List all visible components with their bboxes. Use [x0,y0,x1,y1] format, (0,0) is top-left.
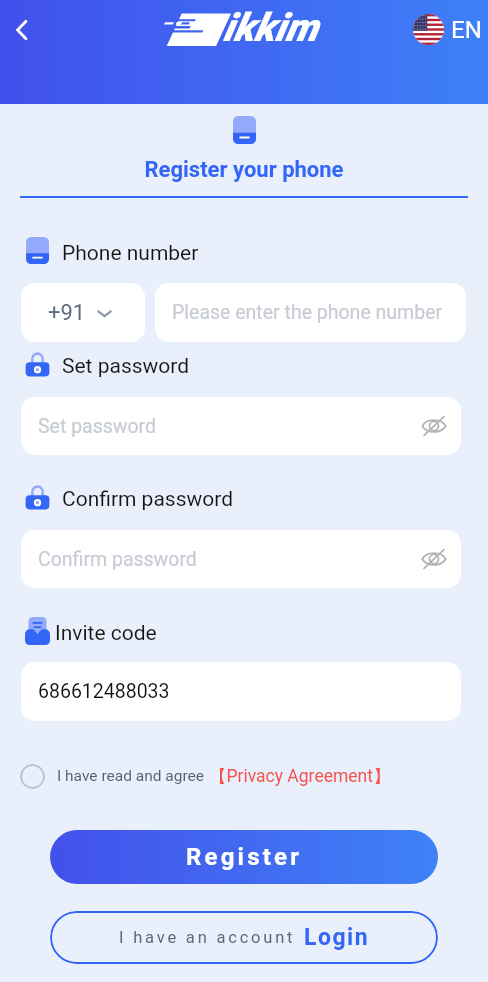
staticText: Login [304,924,370,951]
button[interactable]: +91 [21,283,145,342]
staticText: Register [186,843,303,871]
staticText: Please enter the phone number [172,301,443,324]
button[interactable]: 686612488033 [21,662,461,721]
staticText: Invite code [55,621,157,646]
button[interactable]: Back [4,12,40,48]
button[interactable]: Toggle password visibility [418,410,450,442]
button[interactable]: Confirm password [21,530,461,588]
button[interactable]: I have an account [50,911,438,964]
staticText: 【Privacy Agreement】 [209,765,391,787]
button[interactable]: Please enter the phone number [155,283,466,342]
staticText: Confirm password [38,548,197,571]
staticText: Confirm password [62,487,234,512]
button[interactable]: Set password [21,397,461,455]
staticText: Register your phone [0,157,488,183]
staticText: Set password [38,415,157,438]
staticText: +91 [48,300,86,326]
staticText: 686612488033 [38,680,170,703]
staticText: I have read and agree [57,767,204,785]
staticText: Set password [62,354,190,379]
staticText: Phone number [62,241,199,266]
button[interactable]: I have read and agree [20,760,391,792]
button[interactable]: Register [50,830,438,884]
staticText: EN [451,16,482,44]
staticText: ikkim [223,5,318,51]
staticText: I have an account [119,928,296,947]
button[interactable]: EN [413,14,482,45]
button[interactable]: Toggle password visibility [418,543,450,575]
